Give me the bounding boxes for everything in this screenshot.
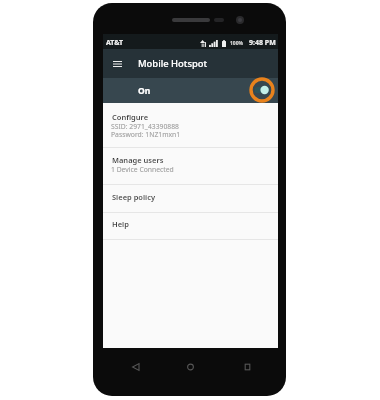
staticText: On xyxy=(138,85,151,97)
button[interactable]: Back xyxy=(125,357,145,377)
button[interactable]: Mobile hotspot switch, on xyxy=(250,85,270,95)
button[interactable]: Open navigation menu xyxy=(108,55,126,73)
button[interactable]: Manage users xyxy=(103,148,278,184)
staticText: SSID: 2971_43390888 xyxy=(111,122,179,131)
staticText: AT&T xyxy=(106,38,124,48)
button[interactable]: Sleep policy xyxy=(103,185,278,212)
button[interactable]: Home xyxy=(180,357,200,377)
staticText: Password: 1NZ1mxn1 xyxy=(111,130,181,139)
staticText: Configure xyxy=(112,112,149,122)
staticText: Help xyxy=(112,219,129,229)
button[interactable]: On xyxy=(103,78,278,103)
staticText: Manage users xyxy=(112,155,164,165)
staticText: Sleep policy xyxy=(112,192,156,202)
staticText: 1 Device Connected xyxy=(111,165,174,174)
button[interactable]: Help xyxy=(103,213,278,239)
staticText: 100% xyxy=(230,40,244,47)
button[interactable]: Recent apps xyxy=(237,357,257,377)
staticText: Mobile Hotspot xyxy=(138,57,208,70)
button[interactable]: Configure xyxy=(103,103,278,147)
staticText: 9:48 PM xyxy=(249,38,276,48)
